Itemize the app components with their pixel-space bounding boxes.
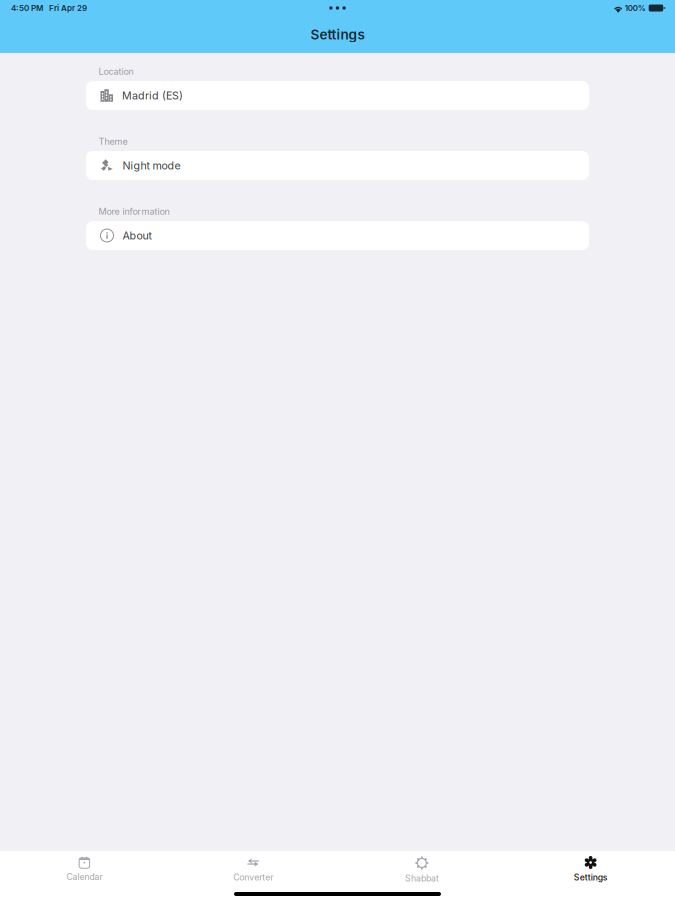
button[interactable]: About xyxy=(86,221,589,250)
staticText: Settings xyxy=(310,26,364,43)
staticText: More information xyxy=(98,206,169,217)
button[interactable]: Shabbat xyxy=(337,851,506,895)
button[interactable]: Madrid (ES) xyxy=(86,81,589,110)
staticText: About xyxy=(122,229,151,242)
staticText: 4:50 PM xyxy=(11,3,43,13)
staticText: Theme xyxy=(98,136,127,147)
staticText: Madrid (ES) xyxy=(122,89,183,102)
staticText: Shabbat xyxy=(405,873,439,883)
staticText: Location xyxy=(98,66,133,77)
button[interactable]: Converter xyxy=(169,851,338,895)
button[interactable]: Night mode xyxy=(86,151,589,180)
staticText: Night mode xyxy=(122,159,180,172)
staticText: Fri Apr 29 xyxy=(49,3,87,13)
button[interactable]: Settings xyxy=(506,851,675,895)
staticText: 100% xyxy=(625,3,646,13)
staticText: Settings xyxy=(574,872,608,882)
button[interactable]: Calendar xyxy=(0,851,169,895)
staticText: Converter xyxy=(233,872,273,882)
staticText: Calendar xyxy=(66,871,102,882)
